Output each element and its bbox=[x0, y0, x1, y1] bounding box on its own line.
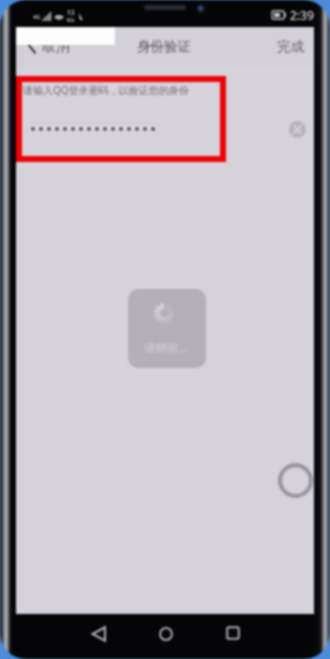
staticText: 完成 bbox=[277, 38, 304, 55]
button[interactable]: Recents bbox=[214, 614, 252, 652]
staticText: 请输入QQ登录密码，以验证您的身份 bbox=[23, 83, 189, 97]
button[interactable]: Back bbox=[80, 615, 118, 653]
button[interactable]: 完成 bbox=[277, 27, 304, 66]
staticText: 请稍候... bbox=[144, 340, 188, 356]
button[interactable]: Floating action bbox=[278, 463, 313, 498]
staticText: 2:39 bbox=[290, 7, 314, 23]
button[interactable]: Home bbox=[147, 615, 185, 653]
staticText: 4G bbox=[33, 13, 41, 20]
staticText: 13 bbox=[67, 8, 75, 17]
staticText: 取消 bbox=[42, 38, 70, 56]
button[interactable]: Clear text bbox=[289, 121, 306, 138]
staticText: K/s bbox=[67, 17, 75, 24]
staticText: 身份验证 bbox=[137, 38, 191, 55]
button[interactable]: 取消 bbox=[24, 27, 70, 66]
